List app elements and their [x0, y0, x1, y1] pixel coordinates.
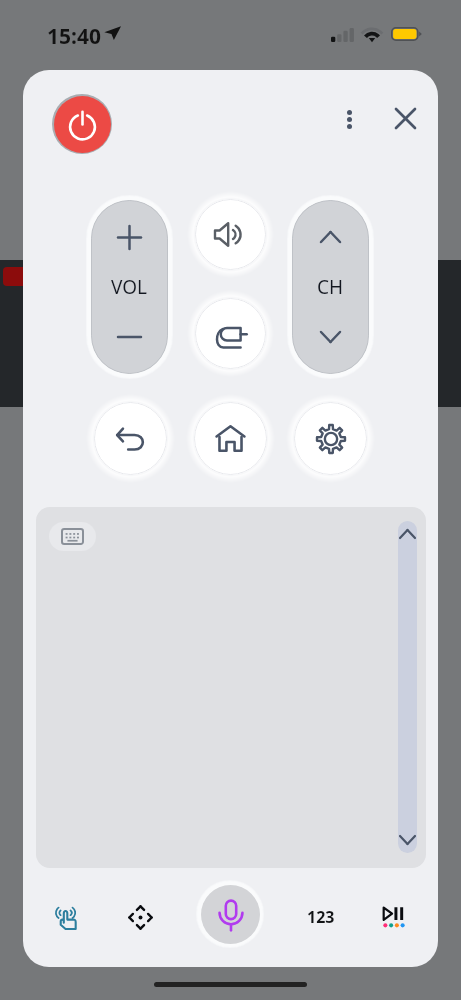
button[interactable]: Volume up — [91, 200, 168, 274]
button[interactable]: Home — [194, 402, 267, 475]
button[interactable]: Back — [94, 402, 167, 475]
button[interactable]: Close — [385, 96, 425, 141]
button[interactable]: Volume down — [91, 300, 168, 374]
staticText: VOL — [111, 274, 148, 300]
button[interactable]: 123 — [300, 896, 342, 938]
button[interactable]: Keyboard — [49, 522, 96, 551]
button[interactable]: More options — [331, 96, 367, 142]
button[interactable]: Touchpad — [36, 507, 426, 868]
staticText: 15:40 — [47, 22, 101, 51]
button[interactable]: Input source — [195, 298, 266, 369]
button[interactable]: Mute — [195, 199, 266, 270]
button[interactable]: Channel down — [292, 300, 369, 374]
button[interactable]: Channel up — [292, 200, 369, 274]
button[interactable]: Voice search — [201, 885, 260, 944]
button[interactable]: Power — [54, 96, 111, 153]
staticText: 123 — [307, 906, 335, 928]
button[interactable]: Gestures — [45, 896, 87, 938]
button[interactable]: D-pad — [119, 896, 161, 938]
button[interactable]: Media controls — [373, 896, 415, 938]
staticText: CH — [317, 274, 344, 300]
button[interactable]: Settings — [294, 402, 367, 475]
